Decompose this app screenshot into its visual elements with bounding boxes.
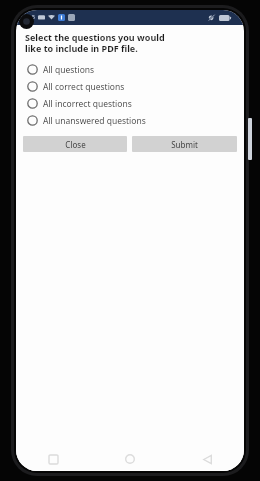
staticText: Submit [171, 139, 198, 150]
staticText: All unanswered questions [43, 115, 146, 127]
button[interactable]: All incorrect questions [16, 95, 244, 112]
button[interactable]: Submit [132, 136, 237, 152]
staticText: Select the questions you would like to i… [25, 31, 165, 54]
staticText: All correct questions [43, 81, 125, 93]
button[interactable]: All correct questions [16, 78, 244, 95]
staticText: Close [65, 139, 86, 150]
staticText: 5 [32, 14, 35, 21]
button[interactable]: Close [23, 136, 127, 152]
button[interactable]: All questions [16, 61, 244, 78]
button[interactable]: Home [119, 448, 141, 470]
button[interactable]: Recent apps [42, 448, 64, 470]
staticText: All incorrect questions [43, 98, 132, 110]
staticText: All questions [43, 64, 95, 76]
button[interactable]: All unanswered questions [16, 112, 244, 129]
other: Power button [248, 118, 252, 160]
button[interactable]: Back [196, 448, 218, 470]
